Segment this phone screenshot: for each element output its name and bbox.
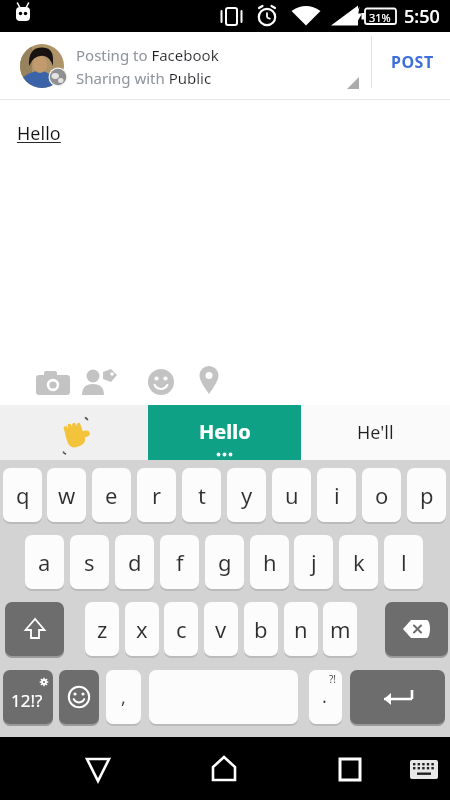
staticText: m <box>330 614 351 644</box>
staticText: 31% <box>369 10 391 25</box>
button[interactable] <box>350 670 445 724</box>
staticText: p <box>420 480 434 510</box>
button[interactable]: p <box>407 468 446 522</box>
button[interactable]: o <box>362 468 401 522</box>
button[interactable] <box>76 747 120 791</box>
staticText: v <box>215 614 227 644</box>
staticText: q <box>16 480 30 510</box>
staticText: g <box>218 547 232 577</box>
staticText: ?! <box>329 672 337 686</box>
button[interactable]: c <box>164 602 198 656</box>
staticText: r <box>152 480 162 510</box>
staticText: i <box>334 480 340 510</box>
button[interactable]: h <box>250 535 289 589</box>
staticText: Hello <box>17 121 61 146</box>
button[interactable]: e <box>92 468 131 522</box>
button[interactable] <box>385 602 448 656</box>
button[interactable] <box>30 365 76 399</box>
staticText: f <box>176 547 184 577</box>
button[interactable]: m <box>323 602 357 656</box>
button[interactable]: u <box>272 468 311 522</box>
button[interactable]: g <box>205 535 244 589</box>
staticText: e <box>105 480 118 510</box>
staticText: b <box>254 614 268 644</box>
staticText: a <box>38 547 51 577</box>
button[interactable] <box>309 670 342 724</box>
button[interactable]: w <box>47 468 86 522</box>
staticText: t <box>198 480 206 510</box>
button[interactable]: a <box>25 535 64 589</box>
button[interactable] <box>80 365 118 399</box>
button[interactable]: t <box>182 468 221 522</box>
button[interactable]: j <box>294 535 333 589</box>
button[interactable]: He'll <box>301 405 450 460</box>
button[interactable]: x <box>125 602 159 656</box>
button[interactable]: , <box>106 670 141 724</box>
button[interactable] <box>196 364 222 398</box>
button[interactable]: z <box>85 602 119 656</box>
button[interactable]: v <box>204 602 238 656</box>
button[interactable] <box>149 670 298 724</box>
button[interactable] <box>146 366 176 398</box>
button[interactable] <box>405 754 443 782</box>
button[interactable]: i <box>317 468 356 522</box>
staticText: 5:50 <box>404 4 440 29</box>
button[interactable]: POST <box>380 42 444 82</box>
staticText: Hello <box>199 418 251 444</box>
staticText: s <box>84 547 95 577</box>
staticText: h <box>263 547 277 577</box>
button[interactable]: n <box>284 602 318 656</box>
button[interactable] <box>5 602 64 656</box>
button[interactable] <box>328 747 372 791</box>
staticText: z <box>97 614 108 644</box>
staticText: y <box>241 480 253 510</box>
staticText: u <box>285 480 299 510</box>
staticText: POST <box>391 51 434 73</box>
button[interactable]: r <box>137 468 176 522</box>
button[interactable]: 12!? <box>3 670 53 724</box>
button[interactable]: s <box>70 535 109 589</box>
button[interactable] <box>59 670 99 724</box>
staticText: Sharing with Public <box>76 68 212 88</box>
button[interactable]: l <box>384 535 423 589</box>
staticText: n <box>294 614 308 644</box>
staticText: . <box>322 684 327 709</box>
button[interactable]: k <box>339 535 378 589</box>
staticText: 12!? <box>11 689 43 712</box>
staticText: c <box>176 614 187 644</box>
staticText: He'll <box>357 420 394 445</box>
button[interactable]: q <box>3 468 42 522</box>
button[interactable]: f <box>160 535 199 589</box>
staticText: j <box>311 547 317 577</box>
staticText: o <box>375 480 389 510</box>
staticText: x <box>136 614 148 644</box>
staticText: l <box>401 547 407 577</box>
staticText: , <box>121 685 126 710</box>
button[interactable] <box>202 747 246 791</box>
button[interactable] <box>0 405 148 460</box>
button[interactable]: y <box>227 468 266 522</box>
button[interactable]: Hello <box>148 405 301 460</box>
staticText: k <box>353 547 365 577</box>
staticText: w <box>58 480 76 510</box>
button[interactable]: b <box>244 602 278 656</box>
button[interactable]: d <box>115 535 154 589</box>
staticText: d <box>128 547 142 577</box>
staticText: Posting to Facebook <box>76 45 219 65</box>
